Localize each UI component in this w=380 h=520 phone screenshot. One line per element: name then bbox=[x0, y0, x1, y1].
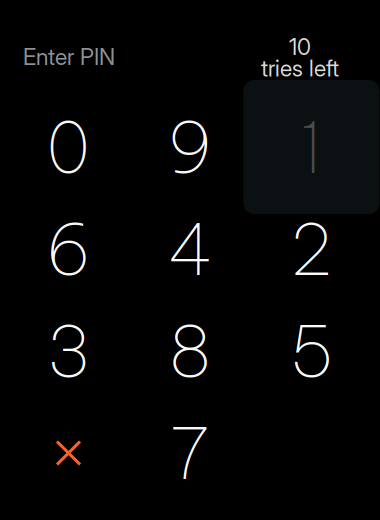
button[interactable]: 5 bbox=[251, 300, 372, 402]
staticText: 3 bbox=[46, 306, 90, 396]
staticText: Enter PIN bbox=[23, 43, 115, 70]
button[interactable]: 9 bbox=[129, 96, 251, 198]
staticText: 9 bbox=[167, 102, 213, 192]
staticText: 10 bbox=[289, 33, 311, 60]
staticText: 1 bbox=[300, 102, 323, 192]
button[interactable]: Delete bbox=[8, 402, 129, 504]
button[interactable]: 4 bbox=[129, 198, 251, 300]
staticText: 8 bbox=[168, 306, 212, 396]
staticText: tries left bbox=[261, 54, 339, 82]
staticText: 7 bbox=[170, 408, 210, 498]
staticText: 4 bbox=[168, 204, 211, 294]
button[interactable]: 2 bbox=[251, 198, 372, 300]
button[interactable]: 7 bbox=[129, 402, 251, 504]
button[interactable]: 0 bbox=[8, 96, 129, 198]
staticText: 0 bbox=[46, 102, 90, 192]
staticText: 5 bbox=[288, 306, 334, 396]
button[interactable]: 1 bbox=[251, 96, 372, 198]
staticText: 2 bbox=[291, 204, 332, 294]
button[interactable]: 6 bbox=[8, 198, 129, 300]
button[interactable]: 8 bbox=[129, 300, 251, 402]
button[interactable]: 3 bbox=[8, 300, 129, 402]
staticText: 6 bbox=[45, 204, 91, 294]
